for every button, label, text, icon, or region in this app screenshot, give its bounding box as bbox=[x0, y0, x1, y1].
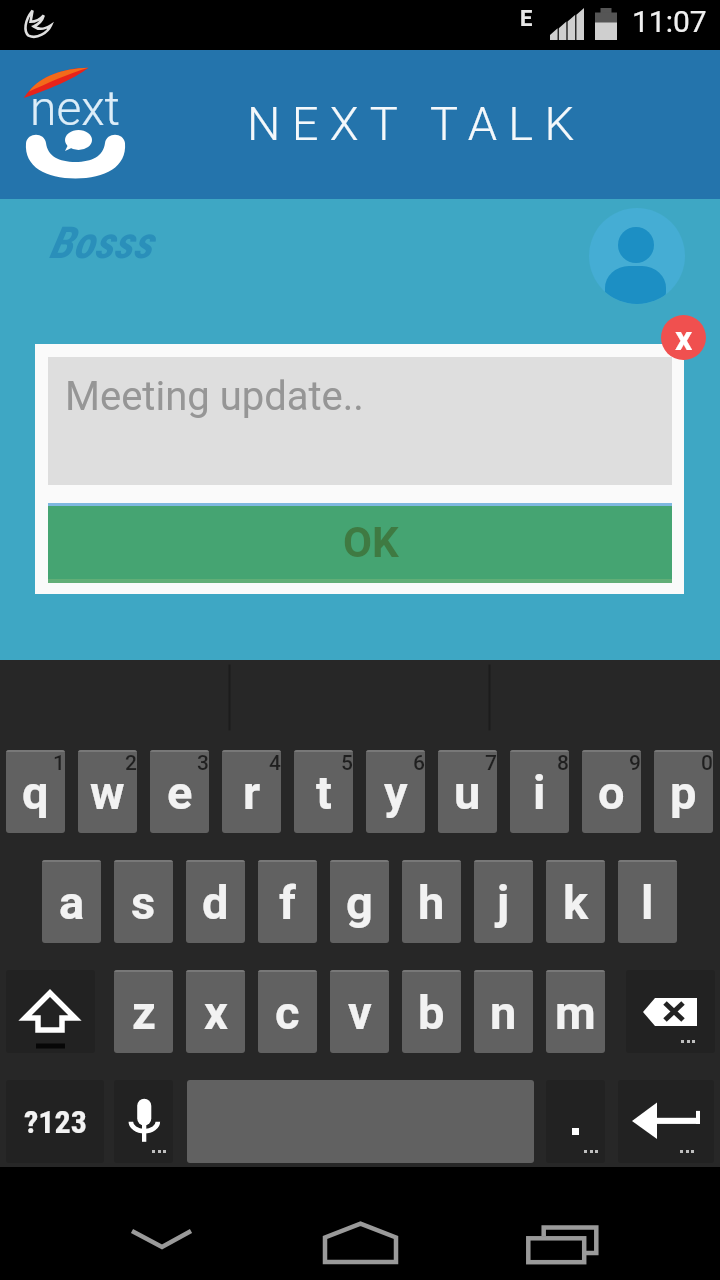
button[interactable]: 8 bbox=[510, 750, 569, 833]
staticText: 3 bbox=[197, 751, 209, 776]
staticText: d bbox=[202, 875, 229, 930]
staticText: k bbox=[563, 875, 589, 930]
staticText: NEXT TALK bbox=[247, 96, 586, 151]
button[interactable]: x bbox=[186, 970, 245, 1053]
staticText: o bbox=[598, 765, 625, 820]
button[interactable]: a bbox=[42, 860, 101, 943]
staticText: 11:07 bbox=[632, 4, 707, 39]
staticText: 4 bbox=[269, 751, 281, 776]
staticText: w bbox=[90, 765, 125, 820]
button[interactable]: Enter bbox=[618, 1080, 714, 1163]
button[interactable]: c bbox=[258, 970, 317, 1053]
button[interactable]: Close bbox=[661, 315, 706, 360]
staticText: 8 bbox=[557, 751, 569, 776]
button[interactable]: 3 bbox=[150, 750, 209, 833]
staticText: 1 bbox=[53, 751, 65, 776]
staticText: next bbox=[30, 80, 121, 136]
staticText: 0 bbox=[701, 751, 713, 776]
button[interactable]: Hide keyboard bbox=[100, 1177, 224, 1270]
button[interactable]: Shift bbox=[6, 970, 95, 1053]
staticText: g bbox=[346, 875, 373, 930]
staticText: r bbox=[243, 765, 261, 820]
button[interactable]: Backspace bbox=[626, 970, 715, 1053]
staticText: u bbox=[454, 765, 481, 820]
button[interactable]: 4 bbox=[222, 750, 281, 833]
staticText: e bbox=[167, 765, 193, 820]
staticText: p bbox=[670, 765, 697, 820]
staticText: E bbox=[520, 6, 533, 32]
button[interactable]: d bbox=[186, 860, 245, 943]
staticText: 5 bbox=[341, 751, 353, 776]
button[interactable]: s bbox=[114, 860, 173, 943]
button[interactable]: Recent apps bbox=[500, 1177, 620, 1270]
button[interactable]: v bbox=[330, 970, 389, 1053]
staticText: 2 bbox=[125, 751, 137, 776]
button[interactable]: 2 bbox=[78, 750, 137, 833]
button[interactable]: m bbox=[546, 970, 605, 1053]
button[interactable]: n bbox=[474, 970, 533, 1053]
staticText: f bbox=[279, 875, 296, 930]
button[interactable]: j bbox=[474, 860, 533, 943]
staticText: j bbox=[497, 875, 510, 930]
staticText: z bbox=[132, 985, 156, 1040]
staticText: 9 bbox=[629, 751, 641, 776]
button[interactable]: Home bbox=[300, 1177, 420, 1270]
staticText: Bosss bbox=[49, 217, 153, 269]
staticText: 7 bbox=[485, 751, 497, 776]
staticText: v bbox=[348, 985, 372, 1040]
button[interactable]: f bbox=[258, 860, 317, 943]
staticText: i bbox=[533, 765, 546, 820]
button[interactable]: b bbox=[402, 970, 461, 1053]
staticText: b bbox=[418, 985, 445, 1040]
button[interactable]: z bbox=[114, 970, 173, 1053]
button[interactable]: Symbols bbox=[6, 1080, 104, 1163]
staticText: m bbox=[555, 985, 596, 1040]
staticText: l bbox=[641, 875, 654, 930]
button[interactable]: 0 bbox=[654, 750, 713, 833]
button[interactable]: k bbox=[546, 860, 605, 943]
staticText: q bbox=[22, 765, 49, 820]
staticText: t bbox=[316, 765, 332, 820]
staticText: x bbox=[675, 318, 693, 358]
staticText: n bbox=[490, 985, 517, 1040]
button[interactable]: Meeting update.. bbox=[48, 357, 672, 485]
button[interactable]: h bbox=[402, 860, 461, 943]
staticText: y bbox=[384, 765, 408, 820]
button[interactable]: g bbox=[330, 860, 389, 943]
staticText: h bbox=[418, 875, 445, 930]
button[interactable]: Voice input bbox=[114, 1080, 173, 1163]
button[interactable]: 1 bbox=[6, 750, 65, 833]
button[interactable]: l bbox=[618, 860, 677, 943]
staticText: OK bbox=[343, 518, 399, 567]
staticText: ?123 bbox=[24, 1103, 87, 1141]
staticText: s bbox=[131, 875, 156, 930]
button[interactable]: Profile bbox=[589, 208, 685, 304]
button[interactable]: Period bbox=[546, 1080, 605, 1163]
button[interactable]: 6 bbox=[366, 750, 425, 833]
button[interactable]: OK bbox=[48, 503, 672, 583]
button[interactable]: 7 bbox=[438, 750, 497, 833]
staticText: 6 bbox=[413, 751, 425, 776]
staticText: x bbox=[204, 985, 228, 1040]
staticText: a bbox=[59, 875, 85, 930]
button[interactable]: 5 bbox=[294, 750, 353, 833]
staticText: Meeting update.. bbox=[65, 373, 364, 420]
button[interactable]: 9 bbox=[582, 750, 641, 833]
staticText: c bbox=[275, 985, 300, 1040]
